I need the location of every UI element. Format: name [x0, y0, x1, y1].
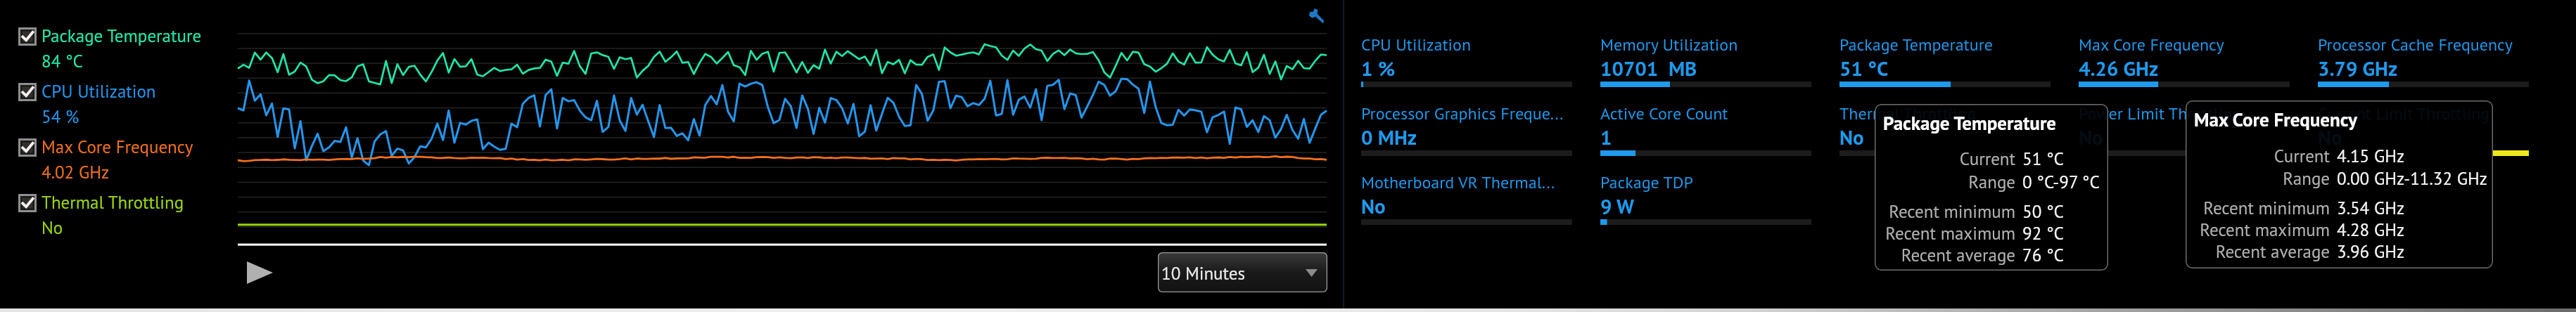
staticText: Memory Utilization — [1600, 34, 1738, 56]
staticText: Recent maximum — [1875, 222, 2015, 245]
staticText: 51 °C — [2022, 148, 2064, 170]
button[interactable]: Max Core Frequency — [17, 136, 221, 180]
staticText: Recent maximum — [2186, 219, 2330, 241]
staticText: 9 W — [1600, 193, 1635, 219]
staticText: CPU Utilization — [42, 80, 156, 103]
staticText: CPU Utilization — [1361, 34, 1472, 56]
staticText: 10701 MB — [1600, 55, 1697, 82]
staticText: 4.26 GHz — [2079, 55, 2159, 82]
staticText: Processor Graphics Freque... — [1361, 103, 1564, 124]
staticText: Recent average — [1875, 244, 2015, 266]
staticText: 3.79 GHz — [2318, 55, 2398, 82]
staticText: No — [2079, 124, 2103, 150]
staticText: Recent minimum — [2186, 197, 2330, 219]
staticText: 3.96 GHz — [2337, 240, 2405, 263]
staticText: 10 Minutes — [1161, 262, 1245, 285]
staticText: 51 °C — [1839, 55, 1889, 82]
button[interactable] — [0, 308, 2576, 312]
staticText: Thermal Throttling — [42, 191, 184, 214]
staticText: 0 °C-97 °C — [2022, 171, 2100, 193]
staticText: Package Temperature — [1839, 34, 1994, 56]
staticText: No — [1839, 124, 1864, 150]
staticText: 4.15 GHz — [2337, 145, 2405, 167]
staticText: 1 % — [1361, 55, 1396, 82]
staticText: Current Limit Throttling — [2318, 103, 2490, 124]
staticText: Max Core Frequency — [2194, 108, 2357, 132]
staticText: Max Core Frequency — [2079, 34, 2224, 56]
button[interactable]: Max Core Frequency — [2079, 32, 2290, 93]
staticText: Package Temperature — [42, 25, 202, 47]
staticText: No — [2318, 124, 2342, 150]
staticText: 0 MHz — [1361, 124, 1417, 150]
button[interactable]: Current Limit Throttling — [2318, 101, 2529, 162]
staticText: No — [2318, 124, 2342, 150]
staticText: 1 — [1600, 124, 1612, 150]
staticText: 4.02 GHz — [42, 161, 110, 182]
staticText: 0.00 GHz-11.32 GHz — [2337, 167, 2487, 190]
staticText: Range — [1875, 171, 2015, 193]
button[interactable]: Thermal Throttling — [17, 192, 221, 235]
button[interactable]: Processor Graphics Freque... — [1361, 101, 1572, 162]
button[interactable]: Active Core Count — [1600, 101, 1811, 162]
staticText: Recent average — [2186, 240, 2330, 263]
button[interactable]: 10 Minutes — [1158, 252, 1327, 292]
staticText: Current Limit Throttling — [2318, 103, 2490, 124]
staticText: Max Core Frequency — [42, 136, 193, 158]
staticText: 4.28 GHz — [2337, 219, 2405, 241]
staticText: Recent minimum — [1875, 200, 2015, 223]
button[interactable]: Power Limit Throttling — [2079, 101, 2290, 162]
staticText: Power Limit Throttling — [2079, 104, 2108, 124]
staticText: No — [42, 216, 63, 238]
staticText: Thermal Throttling — [1875, 104, 1977, 124]
staticText: No — [1361, 193, 1386, 219]
staticText: 3.54 GHz — [2337, 197, 2405, 219]
staticText: Current — [2186, 145, 2330, 167]
staticText: 50 °C — [2022, 200, 2064, 223]
button[interactable]: Package Temperature — [1839, 32, 2051, 93]
staticText: Range — [2186, 167, 2330, 190]
button[interactable]: Motherboard VR Thermal... — [1361, 170, 1572, 230]
staticText: 84 °C — [42, 50, 83, 71]
button[interactable]: Thermal Throttling — [1839, 101, 2051, 162]
button[interactable]: Package Temperature — [17, 25, 221, 69]
button[interactable]: Memory Utilization — [1600, 32, 1811, 93]
staticText: 76 °C — [2022, 244, 2064, 266]
button[interactable]: Max Core Frequency — [2186, 100, 2493, 268]
button[interactable]: CPU Utilization — [17, 81, 221, 124]
button[interactable]: CPU Utilization — [1361, 32, 1572, 93]
staticText: No — [2079, 124, 2103, 150]
staticText: Active Core Count — [1600, 103, 1728, 124]
button[interactable]: Processor Cache Frequency — [2318, 32, 2529, 93]
staticText: Package TDP — [1600, 171, 1693, 193]
staticText: 92 °C — [2022, 222, 2064, 245]
button[interactable]: Package TDP — [1600, 170, 1811, 230]
staticText: Package Temperature — [1883, 111, 2057, 136]
staticText: Motherboard VR Thermal... — [1361, 171, 1555, 193]
button[interactable]: Play — [242, 257, 277, 288]
button[interactable]: Package Temperature — [1875, 104, 2108, 271]
staticText: Processor Cache Frequency — [2318, 34, 2513, 56]
staticText: Power Limit Throttling — [2186, 103, 2242, 124]
staticText: Power Limit Throttling — [2079, 103, 2242, 124]
staticText: Current — [1875, 148, 2015, 170]
staticText: Thermal Throttling — [1839, 103, 1977, 124]
staticText: 54 % — [42, 105, 79, 126]
button[interactable]: Chart settings — [1304, 4, 1328, 28]
